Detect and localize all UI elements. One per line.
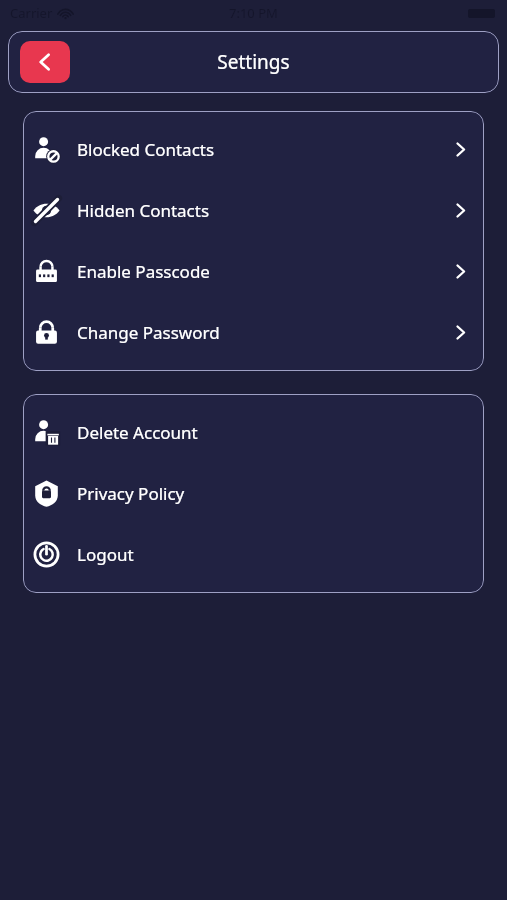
staticText: Blocked Contacts <box>77 138 453 161</box>
staticText: Enable Passcode <box>77 260 453 283</box>
staticText: Hidden Contacts <box>77 199 453 222</box>
button[interactable]: Change Password <box>23 302 484 363</box>
button[interactable]: Back <box>20 41 70 83</box>
button[interactable]: Blocked Contacts <box>23 119 484 180</box>
button[interactable]: Delete Account <box>23 402 484 463</box>
button[interactable]: Hidden Contacts <box>23 180 484 241</box>
staticText: Delete Account <box>77 421 468 444</box>
button[interactable]: Privacy Policy <box>23 463 484 524</box>
staticText: Carrier <box>10 4 53 22</box>
staticText: Privacy Policy <box>77 482 468 505</box>
staticText: 7:10 PM <box>229 4 278 22</box>
button[interactable]: Logout <box>23 524 484 585</box>
staticText: Settings <box>217 49 290 75</box>
staticText: Logout <box>77 543 468 566</box>
button[interactable]: Enable Passcode <box>23 241 484 302</box>
staticText: Change Password <box>77 321 453 344</box>
